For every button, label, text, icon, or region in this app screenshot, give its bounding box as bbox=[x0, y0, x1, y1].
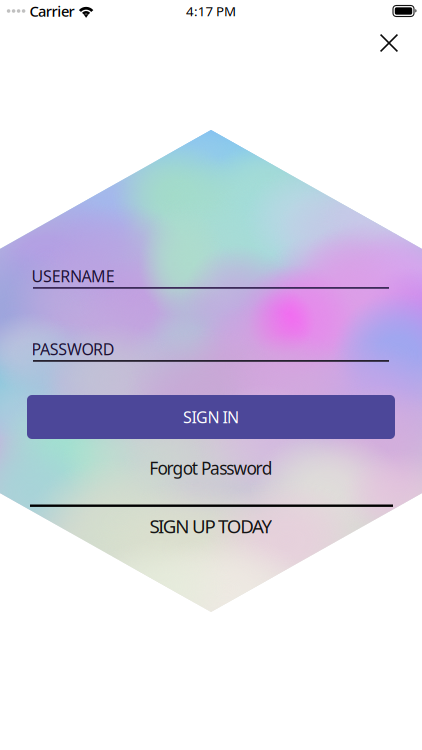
staticText: PASSWORD bbox=[31, 338, 115, 360]
staticText: SIGN bbox=[149, 514, 189, 538]
staticText: USERNAME bbox=[31, 265, 115, 287]
button[interactable]: Close bbox=[367, 21, 411, 65]
staticText: Forgot Password bbox=[149, 456, 273, 479]
staticText: SIGN IN bbox=[183, 406, 239, 428]
staticText: Carrier bbox=[29, 1, 75, 21]
button[interactable]: Forgot Password bbox=[111, 456, 311, 480]
staticText: 4:17 PM bbox=[186, 2, 236, 20]
staticText: TODAY bbox=[218, 514, 272, 538]
staticText: UP bbox=[192, 514, 215, 538]
button[interactable]: SIGN IN bbox=[27, 395, 395, 439]
button[interactable]: SIGN bbox=[111, 514, 311, 538]
